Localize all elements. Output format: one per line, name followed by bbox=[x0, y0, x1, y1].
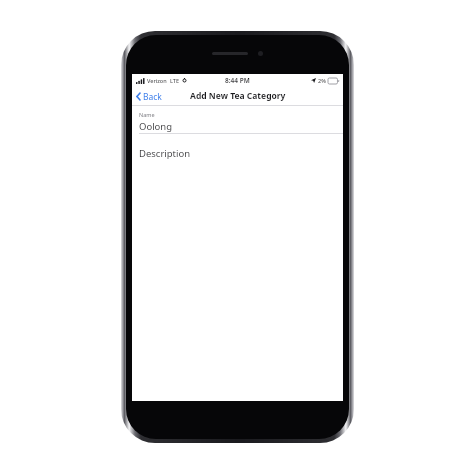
staticText: Name bbox=[139, 111, 155, 118]
staticText: LTE bbox=[170, 77, 179, 84]
button[interactable]: Description bbox=[132, 147, 343, 160]
staticText: Description bbox=[139, 147, 191, 160]
staticText: 8:44 PM bbox=[225, 76, 250, 85]
button[interactable]: Oolong bbox=[132, 120, 343, 133]
staticText: Verizon bbox=[147, 77, 167, 84]
staticText: Add New Tea Category bbox=[190, 90, 286, 102]
staticText: 2% bbox=[318, 77, 326, 84]
button[interactable]: Back bbox=[132, 87, 167, 105]
staticText: Back bbox=[143, 91, 162, 101]
staticText: Oolong bbox=[139, 120, 173, 133]
